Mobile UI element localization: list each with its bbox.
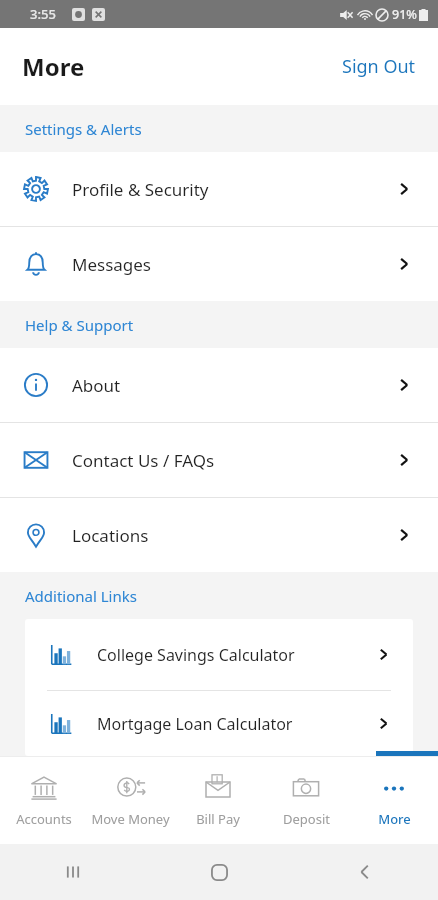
button[interactable]: Deposit xyxy=(262,756,350,844)
other: Recents xyxy=(63,862,83,882)
staticText: Sign Out xyxy=(342,54,416,79)
staticText: More xyxy=(22,50,85,83)
other: Bill Pay xyxy=(203,773,233,803)
button[interactable]: Profile & Security xyxy=(0,152,438,226)
staticText: Move Money xyxy=(91,810,170,828)
staticText: Profile & Security xyxy=(72,178,209,201)
staticText: Additional Links xyxy=(25,586,137,606)
staticText: Contact Us / FAQs xyxy=(72,449,215,472)
staticText: College Savings Calculator xyxy=(97,644,295,666)
staticText: Help & Support xyxy=(25,315,134,335)
staticText: Accounts xyxy=(16,810,72,828)
button[interactable]: Locations xyxy=(0,498,438,572)
other: Move Money xyxy=(116,773,146,803)
button[interactable]: Sign Out xyxy=(320,44,438,89)
button[interactable]: College Savings Calculator xyxy=(25,619,413,690)
button[interactable]: Move Money xyxy=(87,756,174,844)
button[interactable]: Messages xyxy=(0,227,438,301)
staticText: Bill Pay xyxy=(196,810,240,828)
other: Back xyxy=(355,862,375,882)
button[interactable]: Mortgage Loan Calculator xyxy=(25,691,413,756)
staticText: 3:55 xyxy=(30,5,56,23)
button[interactable]: More xyxy=(350,756,438,844)
staticText: Settings & Alerts xyxy=(25,119,142,139)
staticText: 91% xyxy=(392,6,417,23)
button[interactable]: Contact Us / FAQs xyxy=(0,423,438,497)
other: More xyxy=(379,773,409,803)
staticText: About xyxy=(72,374,121,397)
button[interactable]: Accounts xyxy=(0,756,87,844)
other: Home xyxy=(209,862,230,883)
staticText: More xyxy=(378,810,411,828)
other: Accounts xyxy=(29,773,59,803)
staticText: Messages xyxy=(72,253,152,276)
other: Deposit xyxy=(291,773,321,803)
button[interactable]: About xyxy=(0,348,438,422)
staticText: Locations xyxy=(72,524,149,547)
staticText: Mortgage Loan Calculator xyxy=(97,713,293,735)
staticText: Deposit xyxy=(283,810,330,828)
button[interactable]: Bill Pay xyxy=(174,756,262,844)
